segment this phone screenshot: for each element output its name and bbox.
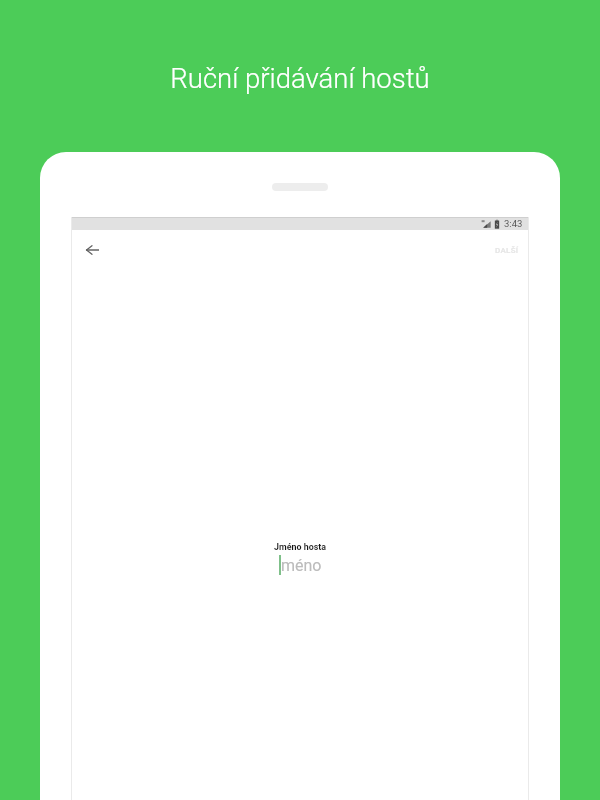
staticText: DALŠÍ <box>495 246 519 255</box>
staticText: méno <box>281 556 322 575</box>
staticText: Jméno hosta <box>274 542 327 552</box>
button[interactable]: DALŠÍ <box>485 235 529 265</box>
button[interactable]: Back <box>79 237 105 263</box>
button[interactable]: Jméno hosta input field <box>279 555 322 575</box>
staticText: 3:43 <box>504 218 523 229</box>
staticText: Ruční přidávání hostů <box>170 62 430 94</box>
